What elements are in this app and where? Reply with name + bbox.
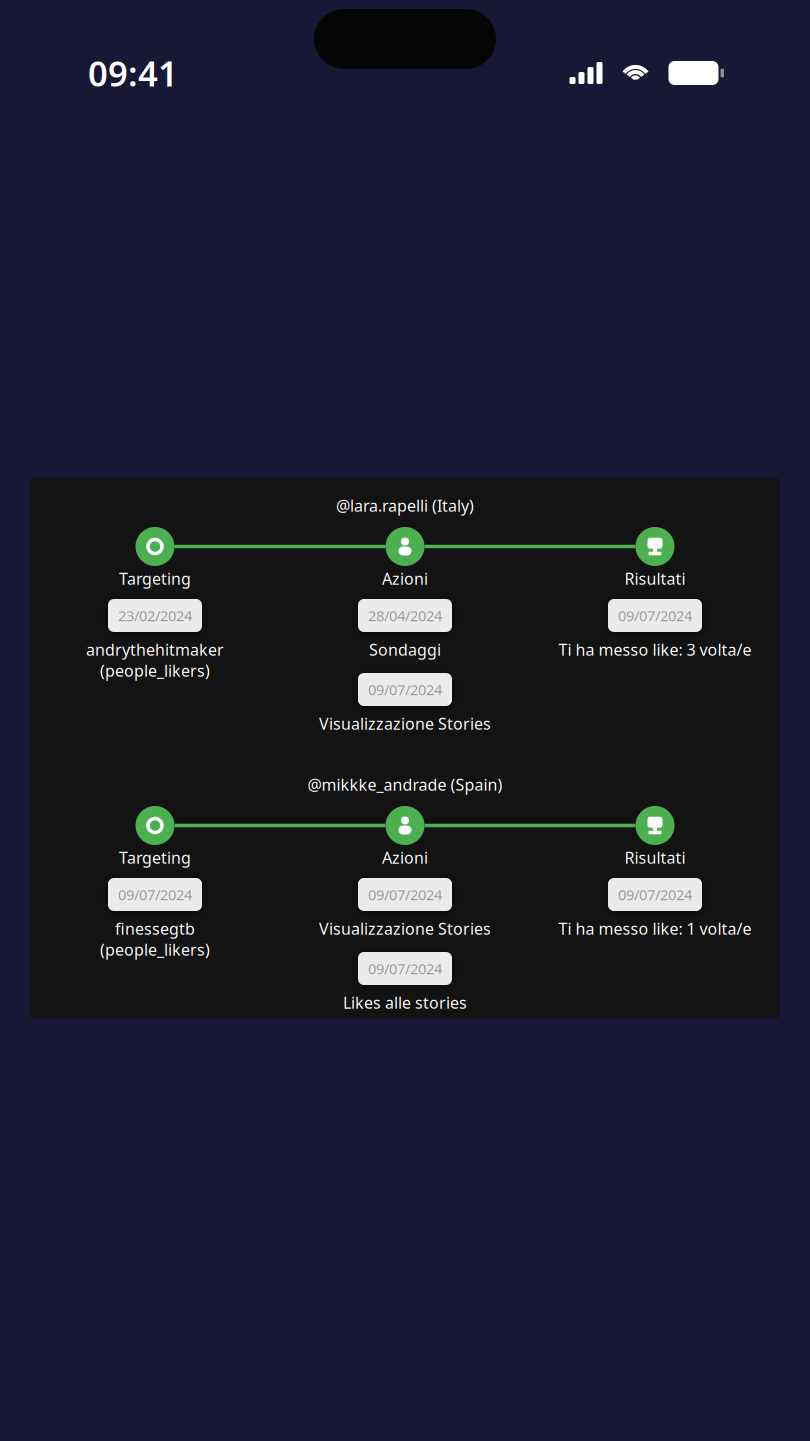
staticText: 09:41 (88, 50, 178, 96)
button[interactable]: @lara.rapelli (Italy) (30, 495, 780, 734)
staticText: Targeting (119, 847, 191, 868)
staticText: finessegtb (115, 918, 195, 939)
staticText: Targeting (119, 568, 191, 589)
staticText: @mikkke_andrade (Spain) (307, 774, 502, 795)
staticText: (people_likers) (100, 939, 210, 960)
staticText: 23/02/2024 (118, 606, 192, 625)
staticText: Risultati (624, 568, 685, 589)
staticText: 09/07/2024 (368, 680, 442, 699)
staticText: 28/04/2024 (368, 606, 442, 625)
staticText: 09/07/2024 (118, 885, 192, 904)
staticText: 09/07/2024 (618, 606, 692, 625)
staticText: Azioni (382, 568, 428, 589)
staticText: (people_likers) (100, 660, 210, 681)
staticText: Likes alle stories (343, 992, 467, 1013)
staticText: andrythehitmaker (86, 639, 224, 660)
staticText: 09/07/2024 (618, 885, 692, 904)
staticText: Risultati (624, 847, 685, 868)
staticText: Sondaggi (369, 639, 441, 660)
staticText: Azioni (382, 847, 428, 868)
staticText: Visualizzazione Stories (319, 713, 491, 734)
staticText: Ti ha messo like: 1 volta/e (558, 918, 751, 939)
button[interactable]: @mikkke_andrade (Spain) (30, 774, 780, 1013)
staticText: 09/07/2024 (368, 885, 442, 904)
staticText: @lara.rapelli (Italy) (336, 495, 474, 516)
staticText: 09/07/2024 (368, 959, 442, 978)
staticText: Ti ha messo like: 3 volta/e (558, 639, 751, 660)
staticText: Visualizzazione Stories (319, 918, 491, 939)
